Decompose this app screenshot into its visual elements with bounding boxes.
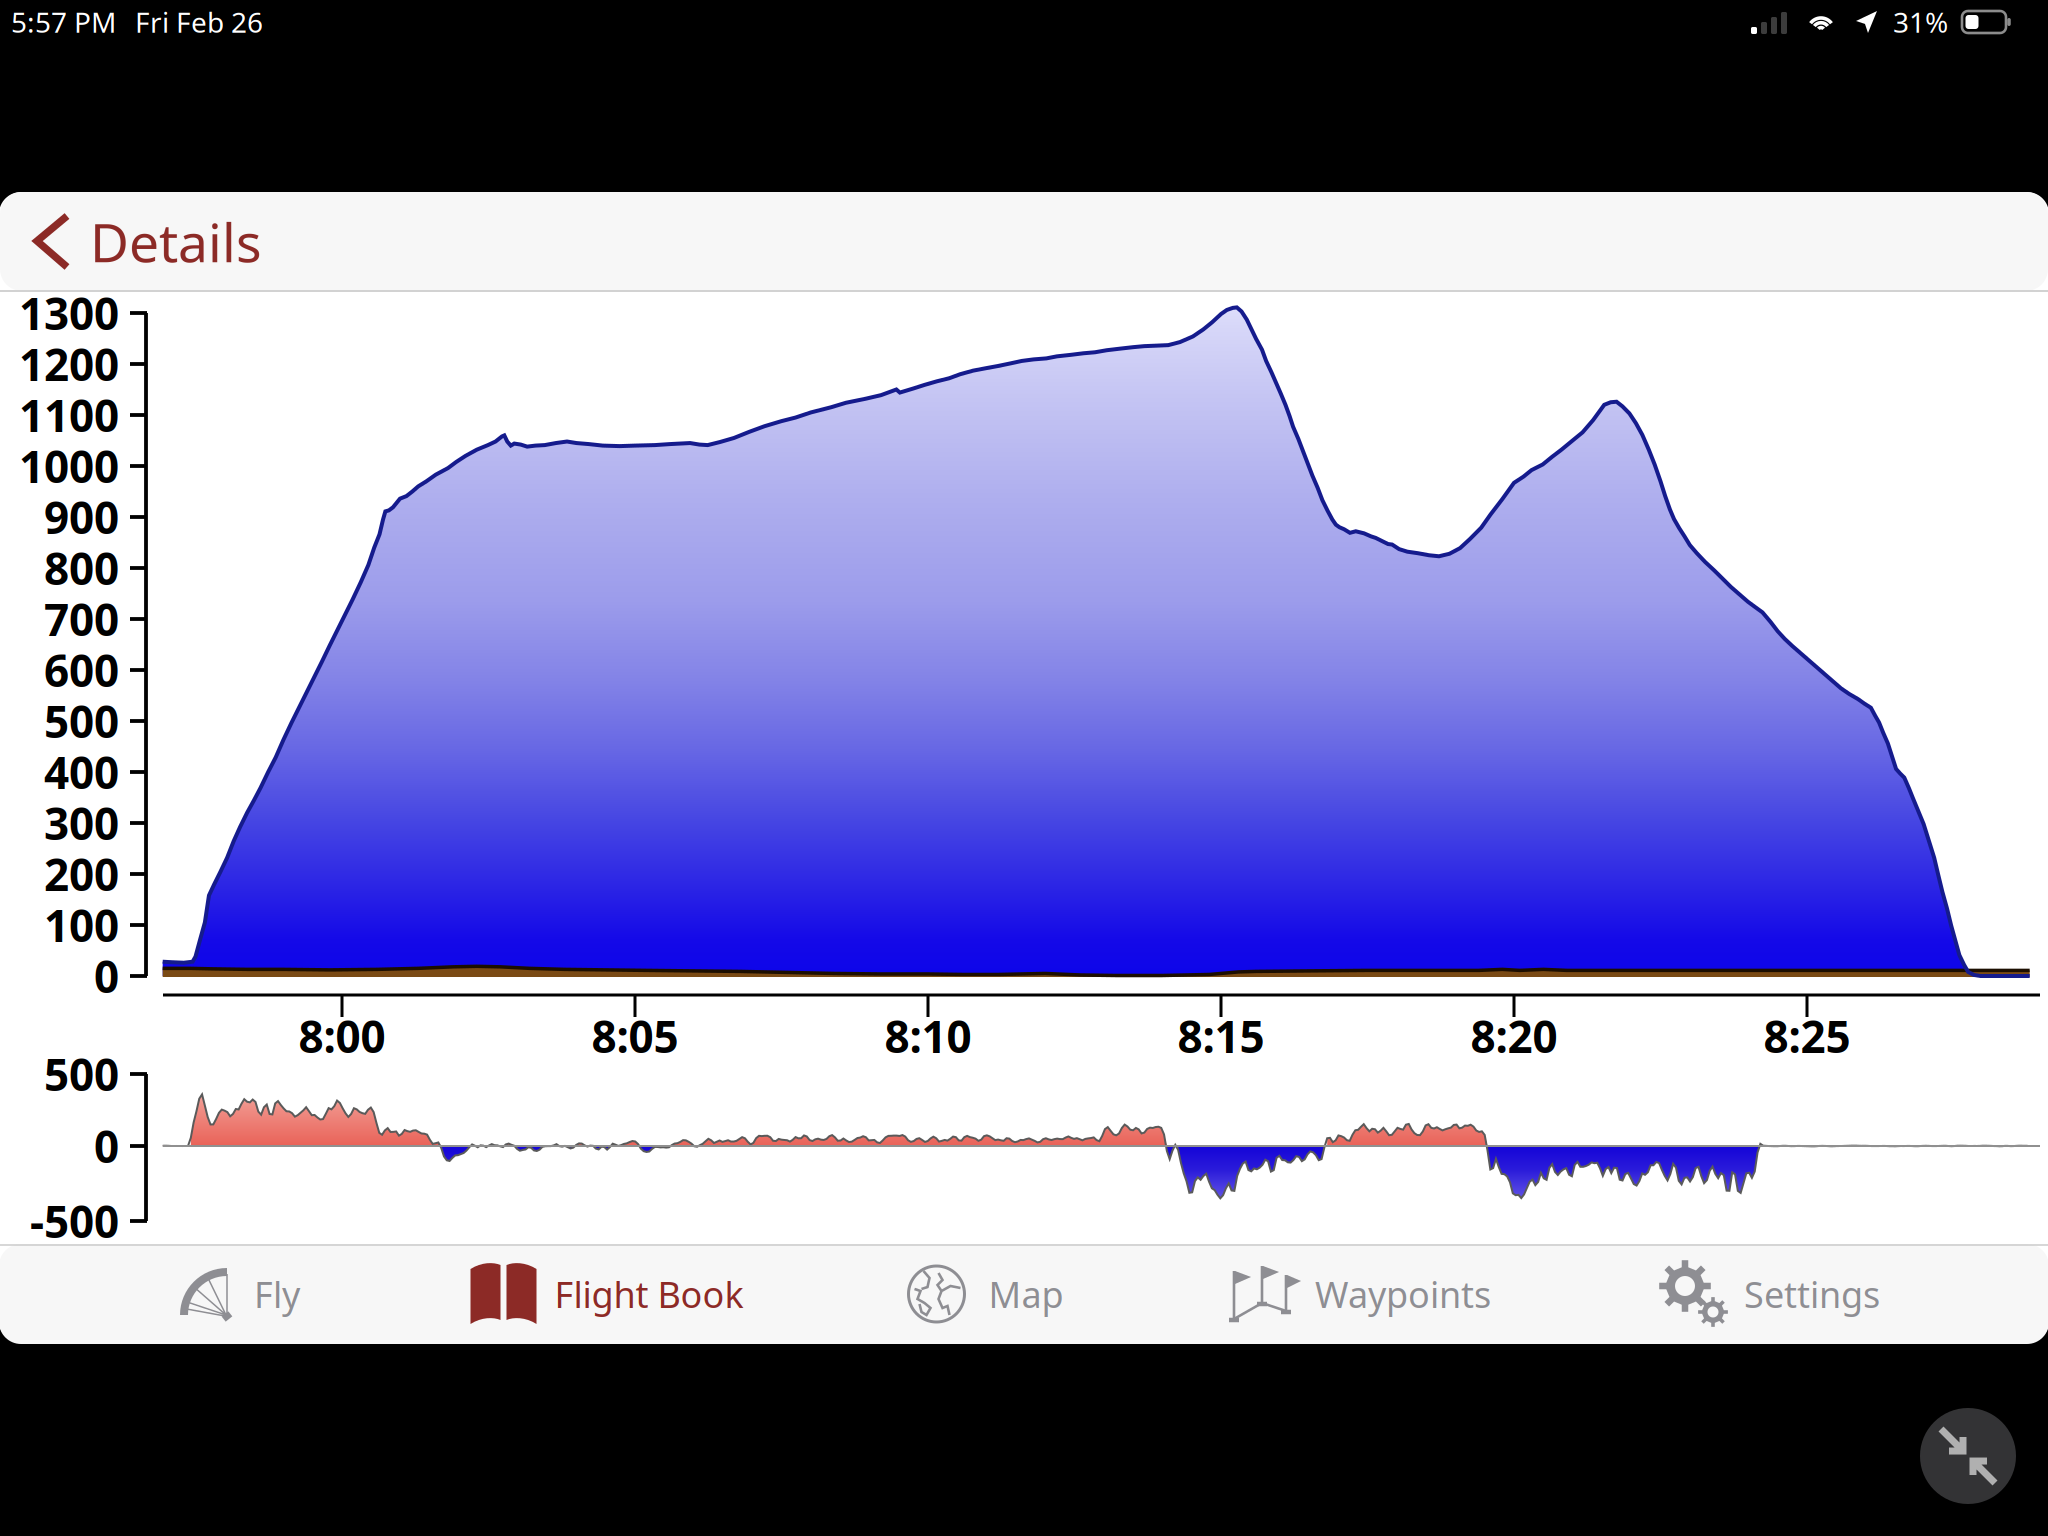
staticText: 8:00 bbox=[298, 1007, 385, 1065]
staticText: 900 bbox=[44, 488, 119, 546]
staticText: 1000 bbox=[19, 437, 119, 495]
button[interactable]: Settings bbox=[1594, 1245, 1944, 1343]
staticText: 0 bbox=[94, 1117, 119, 1175]
staticText: 1200 bbox=[19, 335, 119, 393]
staticText: 8:10 bbox=[884, 1007, 971, 1065]
staticText: -500 bbox=[30, 1192, 119, 1250]
staticText: 1300 bbox=[19, 284, 119, 342]
staticText: Fri Feb 26 bbox=[135, 3, 263, 41]
staticText: 700 bbox=[44, 590, 119, 648]
staticText: Settings bbox=[1744, 1270, 1880, 1318]
staticText: 8:25 bbox=[1763, 1007, 1850, 1065]
staticText: 0 bbox=[94, 947, 119, 1005]
staticText: 8:20 bbox=[1470, 1007, 1557, 1065]
staticText: 100 bbox=[44, 896, 119, 954]
staticText: 600 bbox=[44, 641, 119, 699]
button[interactable]: Waypoints bbox=[1171, 1245, 1551, 1343]
staticText: 200 bbox=[44, 845, 119, 903]
staticText: Details bbox=[90, 206, 262, 277]
button[interactable]: Details bbox=[0, 192, 280, 291]
staticText: Flight Book bbox=[554, 1270, 743, 1318]
staticText: 500 bbox=[44, 692, 119, 750]
button[interactable]: Fly bbox=[66, 1245, 412, 1343]
staticText: 8:15 bbox=[1177, 1007, 1264, 1065]
staticText: 5:57 PM bbox=[11, 3, 116, 41]
button[interactable]: Flight Book bbox=[404, 1245, 804, 1343]
staticText: 800 bbox=[44, 539, 119, 597]
staticText: 400 bbox=[44, 743, 119, 801]
staticText: Waypoints bbox=[1315, 1270, 1491, 1318]
staticText: Map bbox=[988, 1270, 1063, 1318]
button[interactable]: Exit full screen bbox=[1920, 1408, 2016, 1504]
staticText: 31% bbox=[1893, 3, 1948, 41]
staticText: 500 bbox=[44, 1045, 119, 1103]
staticText: 8:05 bbox=[591, 1007, 678, 1065]
button[interactable]: Map bbox=[813, 1245, 1153, 1343]
staticText: 1100 bbox=[19, 386, 119, 444]
staticText: 300 bbox=[44, 794, 119, 852]
staticText: Fly bbox=[254, 1270, 300, 1318]
